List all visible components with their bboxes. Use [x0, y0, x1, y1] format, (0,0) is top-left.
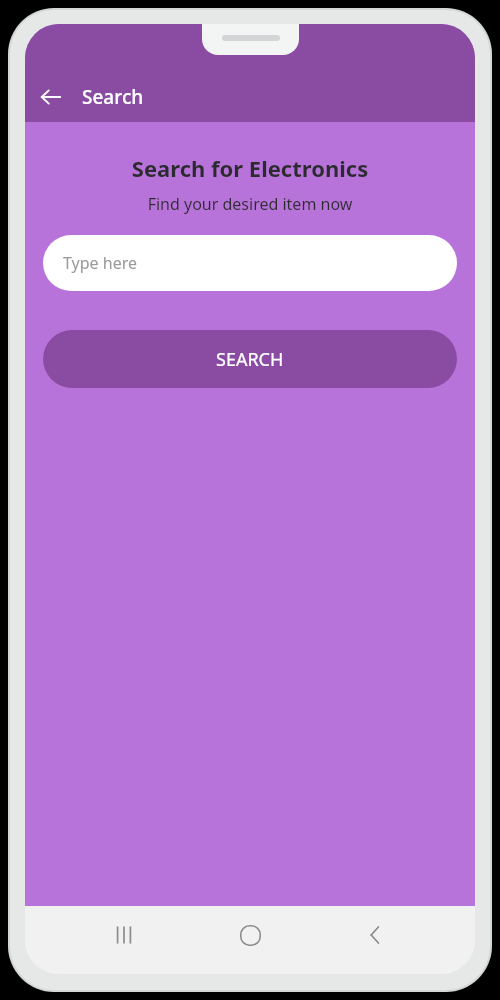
button[interactable]: Back	[31, 77, 71, 117]
staticText: Type here	[63, 252, 137, 274]
staticText: Search	[82, 84, 144, 110]
button[interactable]: Recents	[97, 908, 151, 962]
button[interactable]: Back	[349, 908, 403, 962]
button[interactable]: SEARCH	[43, 330, 457, 388]
button[interactable]: Type here	[43, 235, 457, 291]
staticText: SEARCH	[216, 347, 284, 372]
staticText: Search for Electronics	[25, 153, 475, 183]
button[interactable]: Home	[223, 908, 277, 962]
staticText: Find your desired item now	[25, 193, 475, 215]
